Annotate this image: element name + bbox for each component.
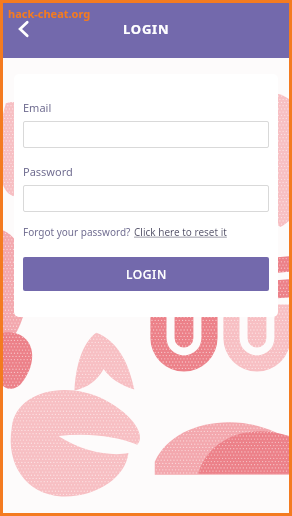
staticText: hack-cheat.org [8, 6, 91, 21]
button[interactable] [23, 185, 269, 212]
button[interactable] [23, 121, 269, 148]
staticText: Click here to reset it [134, 225, 227, 239]
button[interactable]: Back [4, 9, 44, 49]
button[interactable]: Forgot your password? [23, 225, 227, 239]
staticText: Email [23, 100, 52, 115]
button[interactable]: LOGIN [23, 257, 269, 291]
staticText: Forgot your password? [23, 225, 134, 239]
staticText: LOGIN [126, 266, 167, 282]
staticText: LOGIN [123, 20, 170, 38]
staticText: Password [23, 164, 73, 179]
